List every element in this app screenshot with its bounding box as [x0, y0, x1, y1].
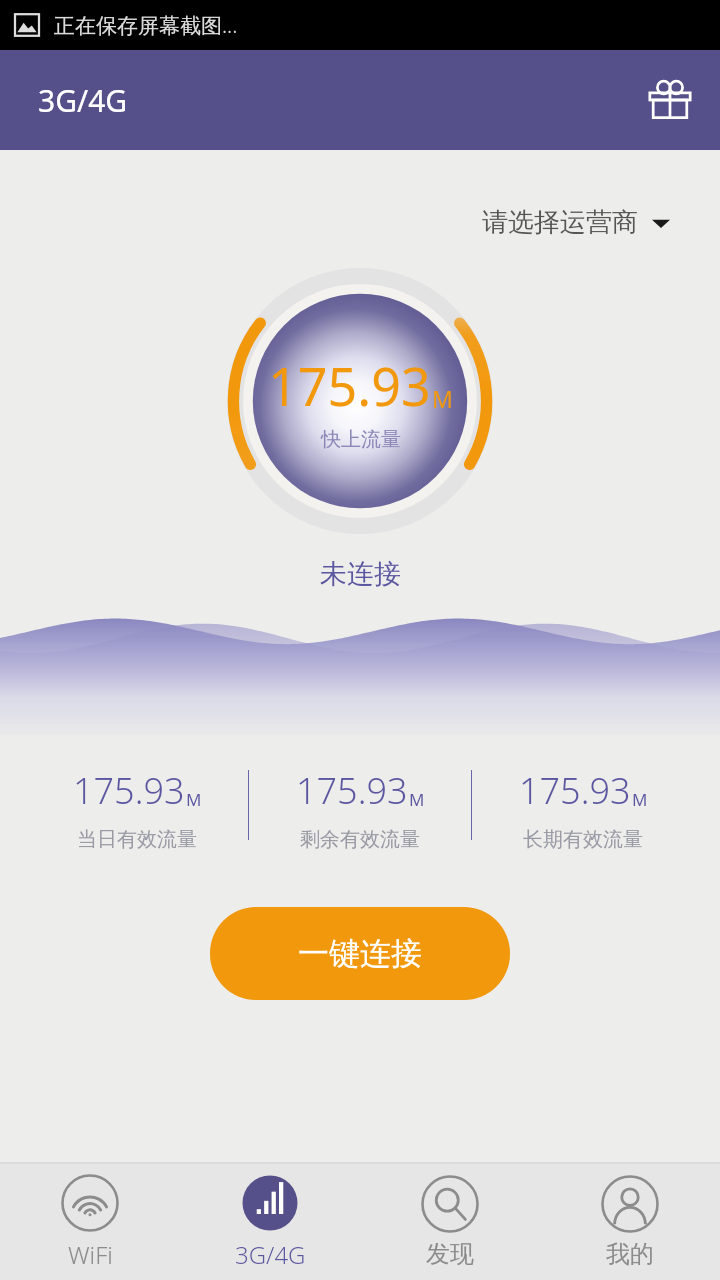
staticText: 175.93 [73, 766, 185, 815]
staticText: 3G/4G [235, 1238, 306, 1271]
button[interactable]: 3G/4G [180, 1164, 360, 1280]
staticText: 未连接 [320, 557, 401, 591]
button[interactable]: WiFi [0, 1164, 180, 1280]
staticText: 正在保存屏幕截图... [54, 11, 238, 40]
staticText: 当日有效流量 [77, 827, 197, 852]
staticText: WiFi [68, 1238, 113, 1271]
staticText: M [432, 383, 453, 414]
button[interactable]: Gifts [640, 70, 700, 130]
button[interactable]: 发现 [360, 1164, 540, 1280]
staticText: 3G/4G [38, 80, 128, 121]
staticText: 请选择运营商 [482, 206, 638, 239]
button[interactable]: 175.93 [26, 766, 248, 852]
button[interactable]: 175.93 [249, 766, 471, 852]
staticText: 我的 [606, 1239, 654, 1269]
staticText: 剩余有效流量 [300, 827, 420, 852]
staticText: 发现 [426, 1239, 474, 1269]
button[interactable]: 一键连接 [210, 907, 510, 1000]
button[interactable]: 请选择运营商 [476, 200, 676, 245]
staticText: 一键连接 [298, 934, 422, 973]
button[interactable]: 我的 [540, 1164, 720, 1280]
staticText: M [632, 788, 648, 811]
staticText: 175.93 [296, 766, 408, 815]
staticText: 快上流量 [321, 427, 401, 452]
staticText: M [409, 788, 425, 811]
button[interactable]: 175.93 [472, 766, 694, 852]
staticText: 175.93 [519, 766, 631, 815]
staticText: M [186, 788, 202, 811]
staticText: 长期有效流量 [523, 827, 643, 852]
staticText: 175.93 [268, 350, 431, 421]
